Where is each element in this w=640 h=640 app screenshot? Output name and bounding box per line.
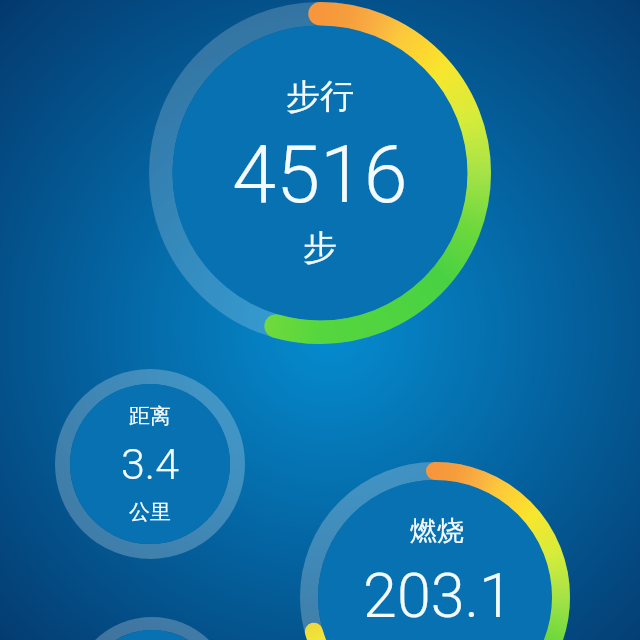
staticText: 步 [303, 226, 337, 269]
staticText: 公里 [129, 499, 171, 525]
staticText: 4516 [232, 129, 408, 222]
staticText: 203.1 [363, 560, 513, 631]
staticText: 燃烧 [410, 514, 464, 548]
button[interactable]: 步行 4516 步 [149, 2, 491, 344]
staticText: 3.4 [121, 439, 179, 489]
staticText: 步行 [286, 75, 354, 118]
staticText: 距离 [129, 403, 171, 429]
